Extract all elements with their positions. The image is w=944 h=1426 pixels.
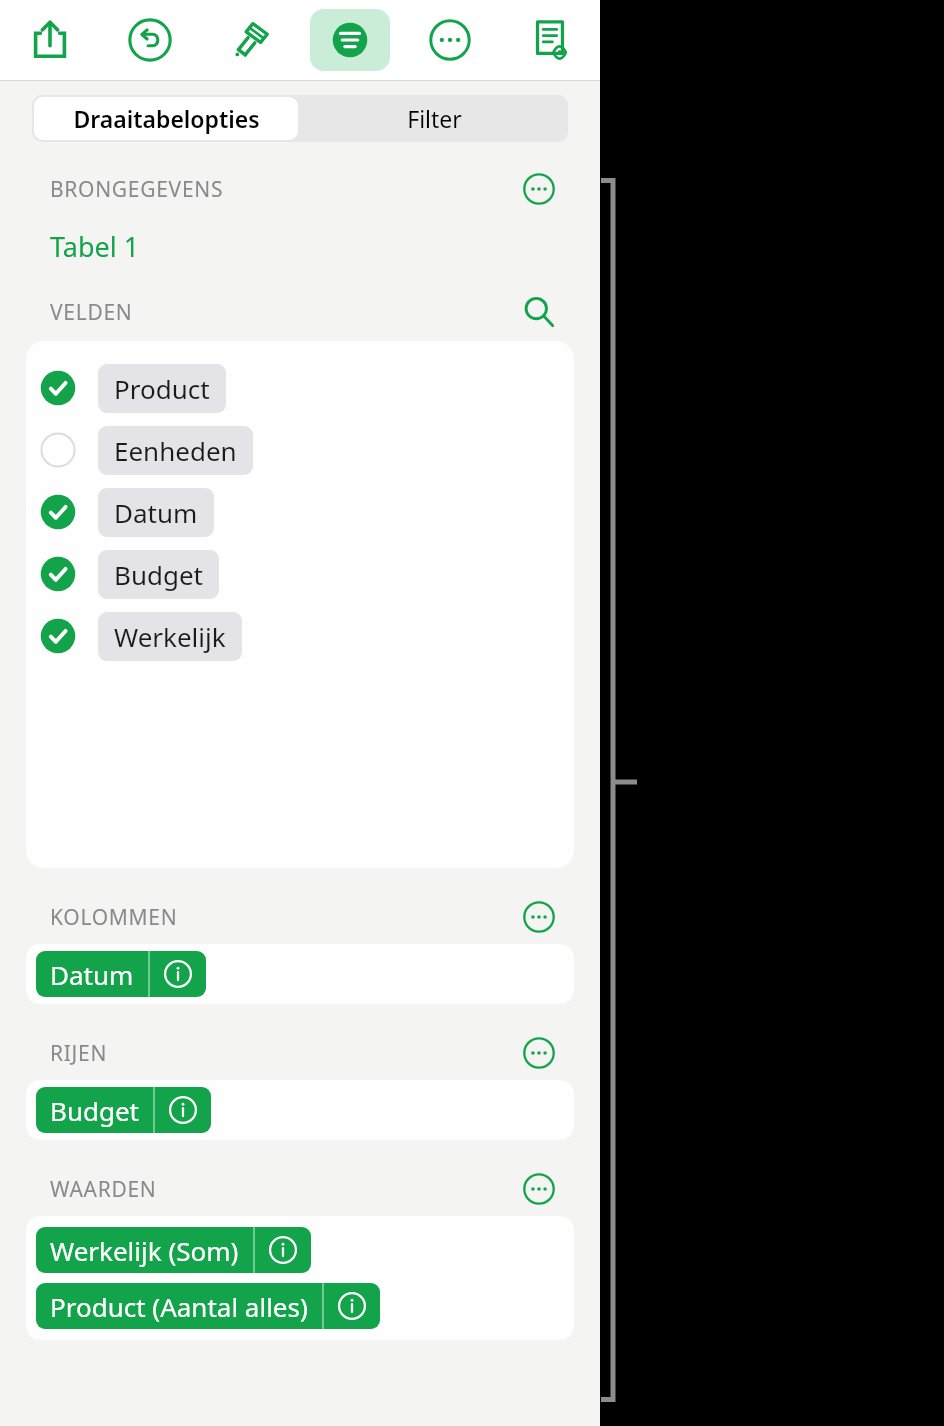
staticText: VELDEN	[50, 298, 133, 327]
button[interactable]: Search fields	[518, 295, 560, 329]
button[interactable]: Datum	[26, 481, 574, 543]
button[interactable]: More options for BRONGEGEVENS	[518, 172, 560, 206]
button[interactable]: Info about Product (Aantal alles)	[324, 1283, 380, 1329]
button[interactable]: Info about Werkelijk (Som)	[255, 1227, 311, 1273]
staticText: Datum	[50, 957, 134, 992]
staticText: Eenheden	[114, 433, 237, 468]
button[interactable]: Product (Aantal alles)	[36, 1283, 380, 1329]
button[interactable]: More options for KOLOMMEN	[518, 900, 560, 934]
staticText: Product (Aantal alles)	[50, 1289, 308, 1324]
button[interactable]: Undo	[100, 0, 200, 80]
button[interactable]: Werkelijk (Som)	[36, 1227, 311, 1273]
button[interactable]: Draaitabelopties	[34, 97, 298, 140]
button[interactable]: Budget	[36, 1087, 211, 1133]
button[interactable]: Datum	[36, 951, 206, 997]
staticText: Budget	[114, 557, 203, 592]
button[interactable]: Info about Budget	[155, 1087, 211, 1133]
staticText: Filter	[407, 103, 462, 134]
staticText: Werkelijk	[114, 619, 226, 654]
button[interactable]: Share	[0, 0, 100, 80]
staticText: WAARDEN	[50, 1175, 157, 1204]
button[interactable]: More options for RIJEN	[518, 1036, 560, 1070]
button[interactable]: Filter	[300, 95, 568, 142]
button[interactable]: More	[400, 0, 500, 80]
staticText: Budget	[50, 1093, 139, 1128]
staticText: RIJEN	[50, 1039, 108, 1068]
staticText: KOLOMMEN	[50, 903, 178, 932]
button[interactable]: More options for WAARDEN	[518, 1172, 560, 1206]
button[interactable]: Info about Datum	[150, 951, 206, 997]
button[interactable]: Eenheden	[26, 419, 574, 481]
button[interactable]: Product	[26, 357, 574, 419]
button[interactable]: Werkelijk	[26, 605, 574, 667]
staticText: Datum	[114, 495, 198, 530]
button[interactable]: Format	[200, 0, 300, 80]
button[interactable]: Document preview	[500, 0, 600, 80]
button[interactable]: Organize	[300, 0, 400, 80]
staticText: Draaitabelopties	[73, 103, 260, 134]
staticText: BRONGEGEVENS	[50, 175, 224, 204]
button[interactable]: Budget	[26, 543, 574, 605]
staticText: Werkelijk (Som)	[50, 1233, 239, 1268]
staticText: Product	[114, 371, 210, 406]
staticText: Tabel 1	[50, 228, 140, 265]
